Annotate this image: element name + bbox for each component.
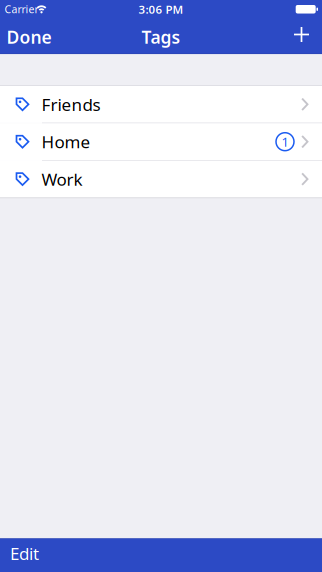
button[interactable]: Friends xyxy=(0,86,322,123)
staticText: Work xyxy=(41,167,82,191)
staticText: Friends xyxy=(41,93,100,116)
staticText: Edit xyxy=(10,542,39,565)
staticText: Done xyxy=(6,25,51,49)
staticText: Carrier xyxy=(4,2,38,16)
staticText: Tags xyxy=(141,25,180,49)
button[interactable]: Work xyxy=(0,161,322,197)
staticText: Home xyxy=(41,130,90,153)
button[interactable]: Done xyxy=(0,25,51,49)
button[interactable]: Home xyxy=(0,123,322,160)
button[interactable]: Edit xyxy=(0,542,39,569)
staticText: 1 xyxy=(281,133,288,150)
staticText: 3:06 PM xyxy=(138,1,183,17)
button[interactable]: Add xyxy=(294,27,322,47)
